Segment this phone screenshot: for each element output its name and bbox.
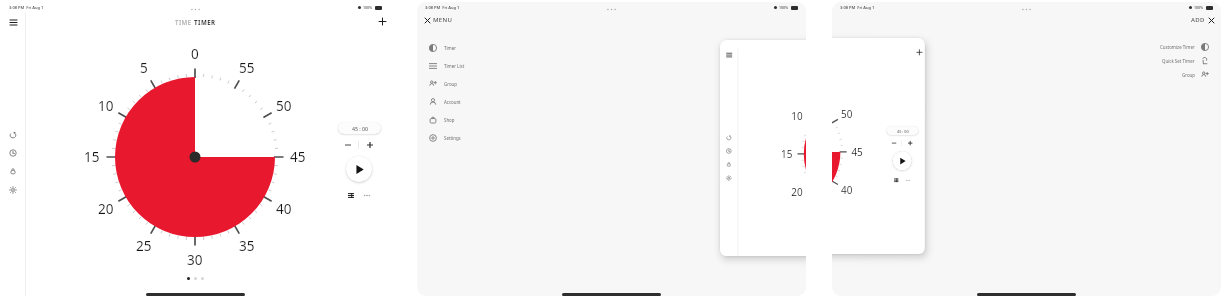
button[interactable]: History — [723, 145, 734, 156]
staticText: 10 — [791, 110, 803, 123]
button[interactable]: Start — [893, 151, 912, 170]
staticText: 25 — [136, 237, 152, 255]
staticText: Quick Set Timer — [1162, 58, 1195, 64]
staticText: 3:08 PM Fri Aug 1 — [425, 5, 460, 10]
button[interactable]: More options — [361, 190, 373, 201]
button[interactable]: Increase — [359, 139, 380, 150]
button[interactable]: Group — [417, 75, 806, 93]
staticText: Shop — [444, 117, 455, 123]
staticText: TIME — [175, 18, 194, 26]
button[interactable]: Close menu — [422, 15, 432, 25]
staticText: 45 : 00 — [352, 125, 368, 132]
button[interactable]: Multitasking controls — [191, 8, 200, 11]
staticText: 3:08 PM Fri Aug 1 — [9, 5, 44, 10]
staticText: 30 — [187, 251, 203, 269]
button[interactable]: Shop — [417, 111, 806, 129]
button[interactable]: Brightness — [5, 182, 20, 197]
button[interactable]: History — [5, 145, 20, 160]
staticText: Settings — [444, 135, 461, 141]
button[interactable]: Menu — [6, 15, 20, 29]
staticText: Timer List — [444, 63, 465, 69]
button[interactable]: Lock — [5, 163, 20, 178]
staticText: 20 — [791, 185, 803, 199]
button[interactable]: Settings — [417, 129, 806, 147]
button[interactable]: Add timer — [375, 14, 389, 28]
staticText: 45 — [851, 145, 863, 158]
staticText: 55 — [239, 59, 255, 77]
button[interactable]: 45 : 00 — [887, 126, 918, 135]
staticText: Timer — [444, 45, 456, 51]
staticText: 3:08 PM Fri Aug 1 — [840, 5, 875, 10]
staticText: 100% — [779, 5, 789, 10]
button[interactable]: Account — [417, 93, 806, 111]
button[interactable]: Increase — [902, 139, 917, 147]
button[interactable]: Customize Timer — [832, 40, 1221, 54]
staticText: 20 — [98, 200, 114, 218]
staticText: 100% — [363, 5, 373, 10]
staticText: Account — [444, 99, 461, 105]
button[interactable]: Reset — [723, 132, 734, 143]
staticText: 50 — [276, 97, 292, 115]
button[interactable]: Decrease — [887, 139, 901, 147]
staticText: 45 : 00 — [897, 128, 909, 133]
staticText: 45 — [290, 148, 306, 166]
button[interactable]: Quick Set Timer — [832, 54, 1221, 68]
button[interactable]: Timer — [417, 39, 806, 57]
button[interactable]: Multitasking controls — [607, 8, 616, 11]
staticText: Group — [444, 81, 457, 87]
button[interactable]: Group — [832, 68, 1221, 82]
button[interactable]: Brightness — [723, 172, 734, 183]
button[interactable]: Timer settings — [892, 176, 901, 184]
staticText: MENU — [433, 16, 453, 24]
staticText: 5 — [140, 59, 148, 77]
button[interactable]: Menu — [724, 50, 734, 60]
staticText: 10 — [98, 97, 114, 115]
button[interactable]: Timer List — [417, 57, 806, 75]
staticText: ADD — [1191, 16, 1205, 24]
staticText: 15 — [84, 148, 100, 166]
button[interactable]: Start — [346, 156, 372, 182]
button[interactable]: Timer settings — [345, 190, 357, 201]
staticText: 15 — [781, 147, 793, 160]
button[interactable]: Add timer — [914, 47, 924, 57]
button[interactable]: 45 : 00 — [338, 122, 381, 134]
staticText: 40 — [276, 200, 292, 218]
button[interactable]: Decrease — [338, 139, 358, 150]
staticText: 40 — [841, 183, 853, 197]
staticText: 35 — [239, 237, 255, 255]
staticText: 50 — [841, 108, 853, 121]
button[interactable]: Lock — [723, 158, 734, 169]
staticText: Customize Timer — [1160, 44, 1195, 50]
button[interactable]: Multitasking controls — [1022, 8, 1031, 11]
button[interactable]: Reset — [5, 127, 20, 142]
button[interactable]: More options — [904, 176, 912, 184]
staticText: Group — [1182, 72, 1195, 78]
button[interactable]: Close — [1206, 15, 1216, 25]
staticText: TIMER — [194, 18, 216, 26]
staticText: 0 — [191, 45, 199, 63]
staticText: 100% — [1194, 5, 1204, 10]
